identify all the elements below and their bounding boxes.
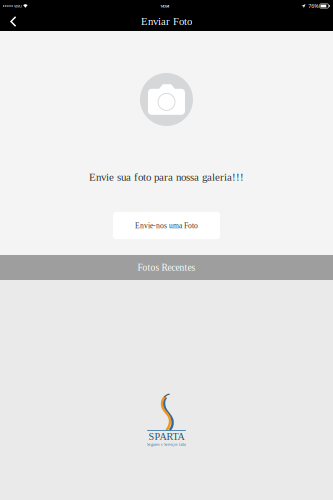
staticText: 76%: [308, 2, 318, 10]
staticText: Seguros e Serviços Ltda: [147, 442, 186, 446]
staticText: Envie sua foto para nossa galeria!!!: [89, 171, 244, 183]
button[interactable]: Envie-nos uma Foto: [113, 212, 220, 239]
staticText: SPARTA: [148, 431, 184, 442]
staticText: Fotos Recentes: [137, 262, 195, 273]
staticText: VIVO: [14, 3, 22, 9]
staticText: Enviar Foto: [141, 16, 192, 27]
button[interactable]: Back: [0, 13, 24, 30]
staticText: Envie-nos uma Foto: [135, 221, 198, 230]
staticText: 14:04: [160, 3, 169, 9]
